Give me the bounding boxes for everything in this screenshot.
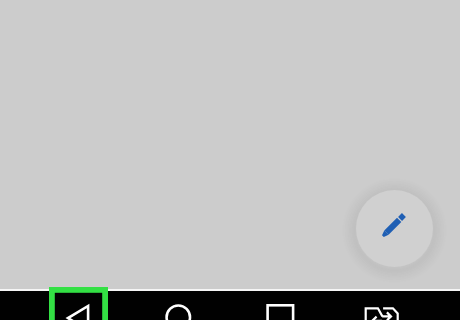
button[interactable]: Compose, edit — [356, 190, 433, 267]
button[interactable]: Back — [0, 291, 138, 320]
button[interactable]: Recent apps — [240, 291, 340, 320]
button[interactable]: Switch apps — [340, 291, 460, 320]
button[interactable]: Home — [138, 291, 240, 320]
